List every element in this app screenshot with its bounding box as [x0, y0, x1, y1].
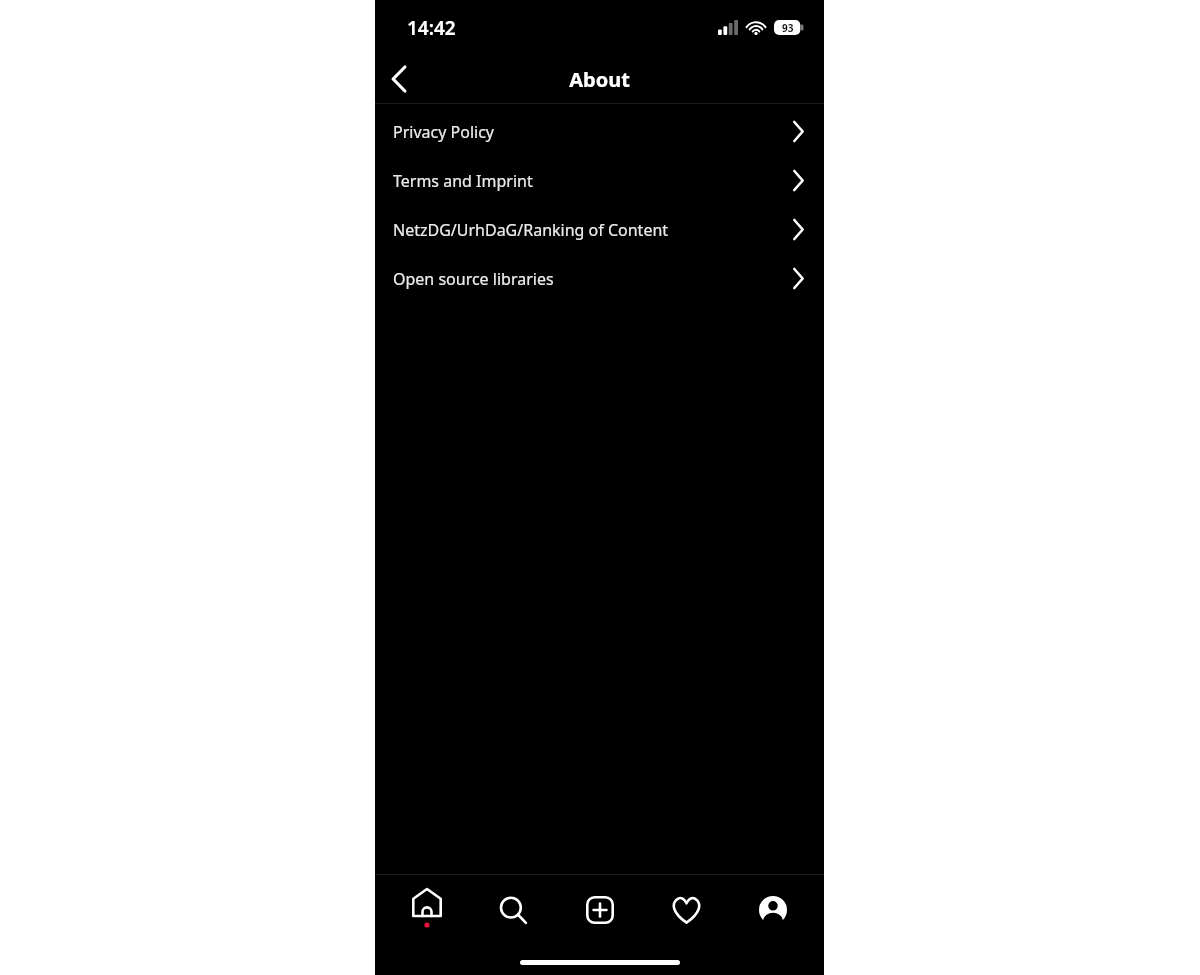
button[interactable]: Privacy Policy: [375, 107, 824, 156]
staticText: Terms and Imprint: [393, 170, 793, 192]
staticText: NetzDG/UrhDaG/Ranking of Content: [393, 219, 793, 241]
button[interactable]: Home: [392, 875, 462, 945]
staticText: Privacy Policy: [393, 121, 793, 143]
button[interactable]: NetzDG/UrhDaG/Ranking of Content: [375, 205, 824, 254]
button[interactable]: Open source libraries: [375, 254, 824, 303]
staticText: 93: [782, 21, 794, 35]
button[interactable]: Profile: [738, 875, 808, 945]
button[interactable]: Search: [478, 875, 548, 945]
staticText: About: [569, 66, 630, 93]
button[interactable]: Terms and Imprint: [375, 156, 824, 205]
staticText: Open source libraries: [393, 268, 793, 290]
button[interactable]: Activity: [651, 875, 721, 945]
button[interactable]: Back: [375, 55, 423, 103]
staticText: 14:42: [407, 15, 456, 41]
button[interactable]: Create: [565, 875, 635, 945]
